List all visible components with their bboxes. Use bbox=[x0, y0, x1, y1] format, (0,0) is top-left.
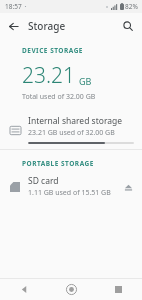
staticText: 1.11 GB used of 15.51 GB bbox=[28, 188, 111, 198]
button[interactable]: Home bbox=[48, 278, 95, 300]
staticText: Storage bbox=[28, 19, 66, 33]
staticText: PORTABLE STORAGE bbox=[22, 159, 142, 168]
staticText: 23.21 bbox=[22, 61, 76, 90]
button[interactable]: Search bbox=[117, 15, 139, 37]
button[interactable]: Back bbox=[2, 15, 24, 37]
staticText: GB bbox=[79, 75, 92, 87]
staticText: Total used of 32.00 GB bbox=[22, 92, 96, 102]
button[interactable]: SD card bbox=[0, 173, 142, 198]
button[interactable]: Eject SD card bbox=[118, 177, 138, 197]
staticText: 18:57 bbox=[5, 2, 22, 11]
button[interactable]: Recents bbox=[95, 278, 142, 300]
staticText: 82% bbox=[125, 2, 138, 11]
button[interactable]: Internal shared storage bbox=[0, 111, 142, 146]
staticText: SD card bbox=[28, 175, 59, 187]
staticText: 23.21 GB used of 32.00 GB bbox=[28, 128, 115, 138]
button[interactable]: Back bbox=[0, 278, 48, 300]
staticText: Internal shared storage bbox=[28, 115, 123, 127]
staticText: DEVICE STORAGE bbox=[22, 46, 142, 55]
